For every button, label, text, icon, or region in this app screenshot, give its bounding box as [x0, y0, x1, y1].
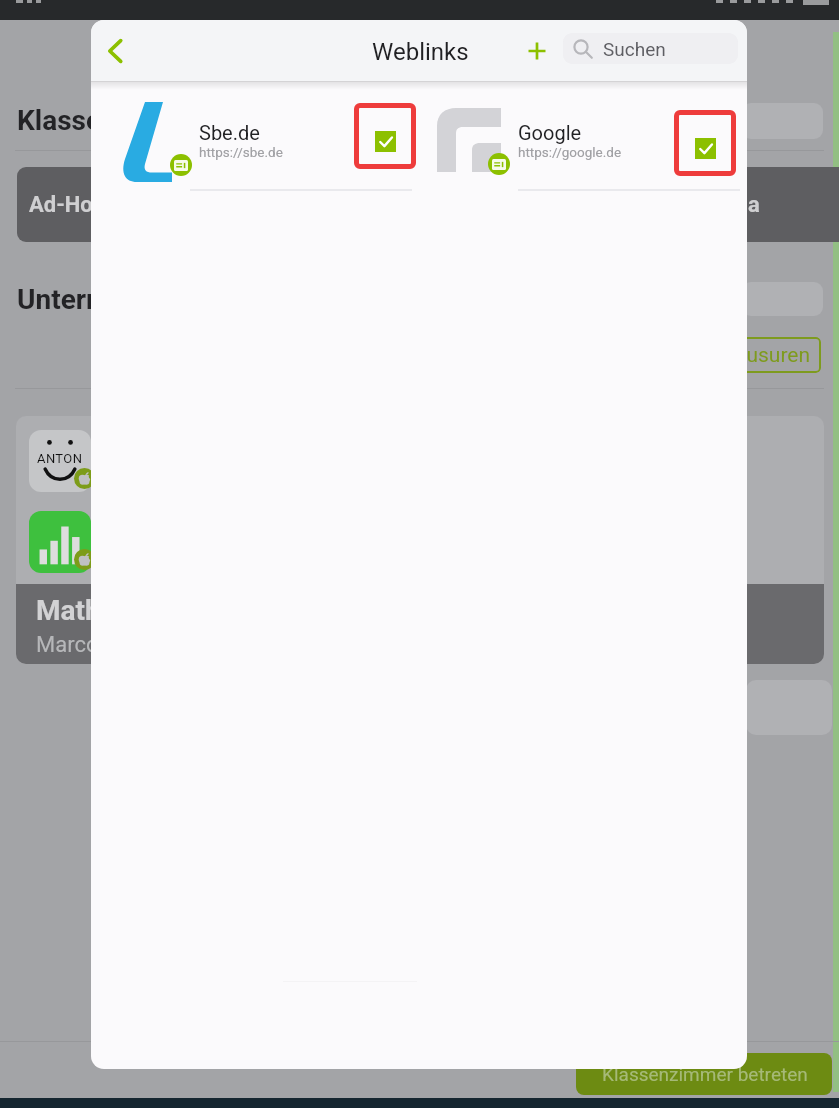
button[interactable]: Klassenzimmer betreten — [576, 1053, 832, 1095]
staticText: Weblinks — [372, 38, 469, 66]
button[interactable]: Auswahl Google — [674, 110, 736, 176]
staticText: ANTON — [37, 451, 83, 466]
staticText: https://google.de — [518, 144, 622, 160]
button[interactable]: Auswahl Sbe.de — [354, 103, 416, 169]
staticText: Unterricht — [17, 283, 144, 316]
staticText: https://sbe.de — [199, 144, 283, 160]
staticText: Sbe.de — [199, 121, 260, 144]
staticText: Google — [518, 121, 582, 144]
staticText: Ad-Hoc Klassenarbeit erstellen — [29, 192, 338, 218]
staticText: Suchen — [603, 38, 666, 60]
staticText: ausuren — [735, 343, 811, 368]
staticText: Klassenarbeiten — [17, 104, 221, 137]
staticText: a — [748, 192, 760, 218]
staticText: Marco Bauer — [36, 632, 161, 658]
button[interactable]: Zurück — [91, 20, 139, 81]
button[interactable]: Google — [419, 81, 747, 189]
staticText: Klassenzimmer betreten — [602, 1063, 808, 1085]
button[interactable]: Sbe.de — [91, 81, 419, 189]
button[interactable]: Suchen — [563, 33, 738, 64]
staticText: Mathematik — [36, 594, 187, 627]
button[interactable]: Weblink hinzufügen — [513, 20, 561, 81]
